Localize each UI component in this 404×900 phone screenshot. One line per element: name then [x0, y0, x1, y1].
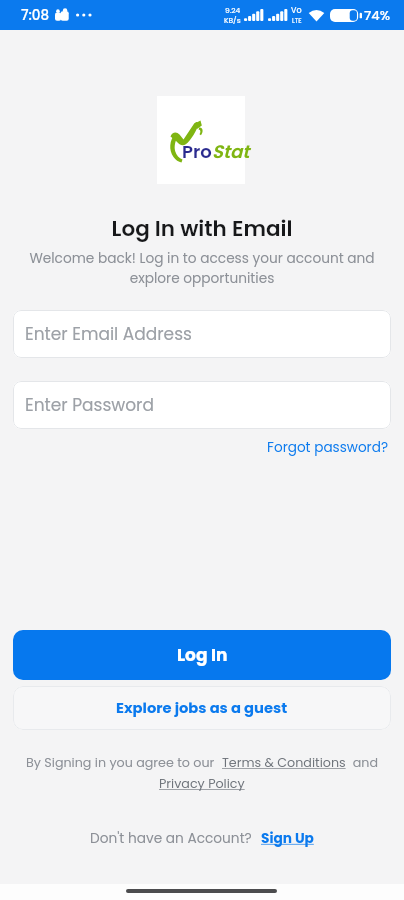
staticText: LTE	[292, 16, 302, 25]
staticText: Explore jobs as a guest	[116, 698, 288, 719]
staticText: Welcome back! Log in to access your acco…	[12, 249, 392, 288]
button[interactable]: Explore jobs as a guest	[13, 686, 391, 730]
staticText: 74%	[364, 6, 391, 24]
staticText: Enter Email Address	[25, 322, 192, 346]
staticText: Vo	[291, 5, 302, 16]
button[interactable]: Terms & Conditions	[222, 754, 346, 772]
staticText: Enter Password	[25, 393, 154, 417]
button[interactable]: Enter Email Address	[13, 310, 391, 358]
staticText: Log In with Email	[0, 213, 404, 243]
button[interactable]: Log In	[13, 630, 391, 680]
staticText: By Signing in you agree to our	[26, 754, 222, 772]
staticText: 7:08	[21, 6, 50, 25]
button[interactable]: Forgot password?	[0, 438, 388, 457]
staticText: Pro	[182, 139, 212, 164]
staticText: 9.24	[225, 5, 241, 15]
button[interactable]: Sign Up	[261, 829, 314, 848]
staticText: Log In	[177, 643, 228, 667]
button[interactable]: Privacy Policy	[159, 775, 245, 793]
button[interactable]: Enter Password	[13, 381, 391, 429]
staticText: KB/s	[224, 15, 241, 25]
staticText: Don't have an Account?	[90, 829, 252, 848]
staticText: Stat	[212, 139, 250, 164]
staticText: and	[346, 754, 379, 772]
